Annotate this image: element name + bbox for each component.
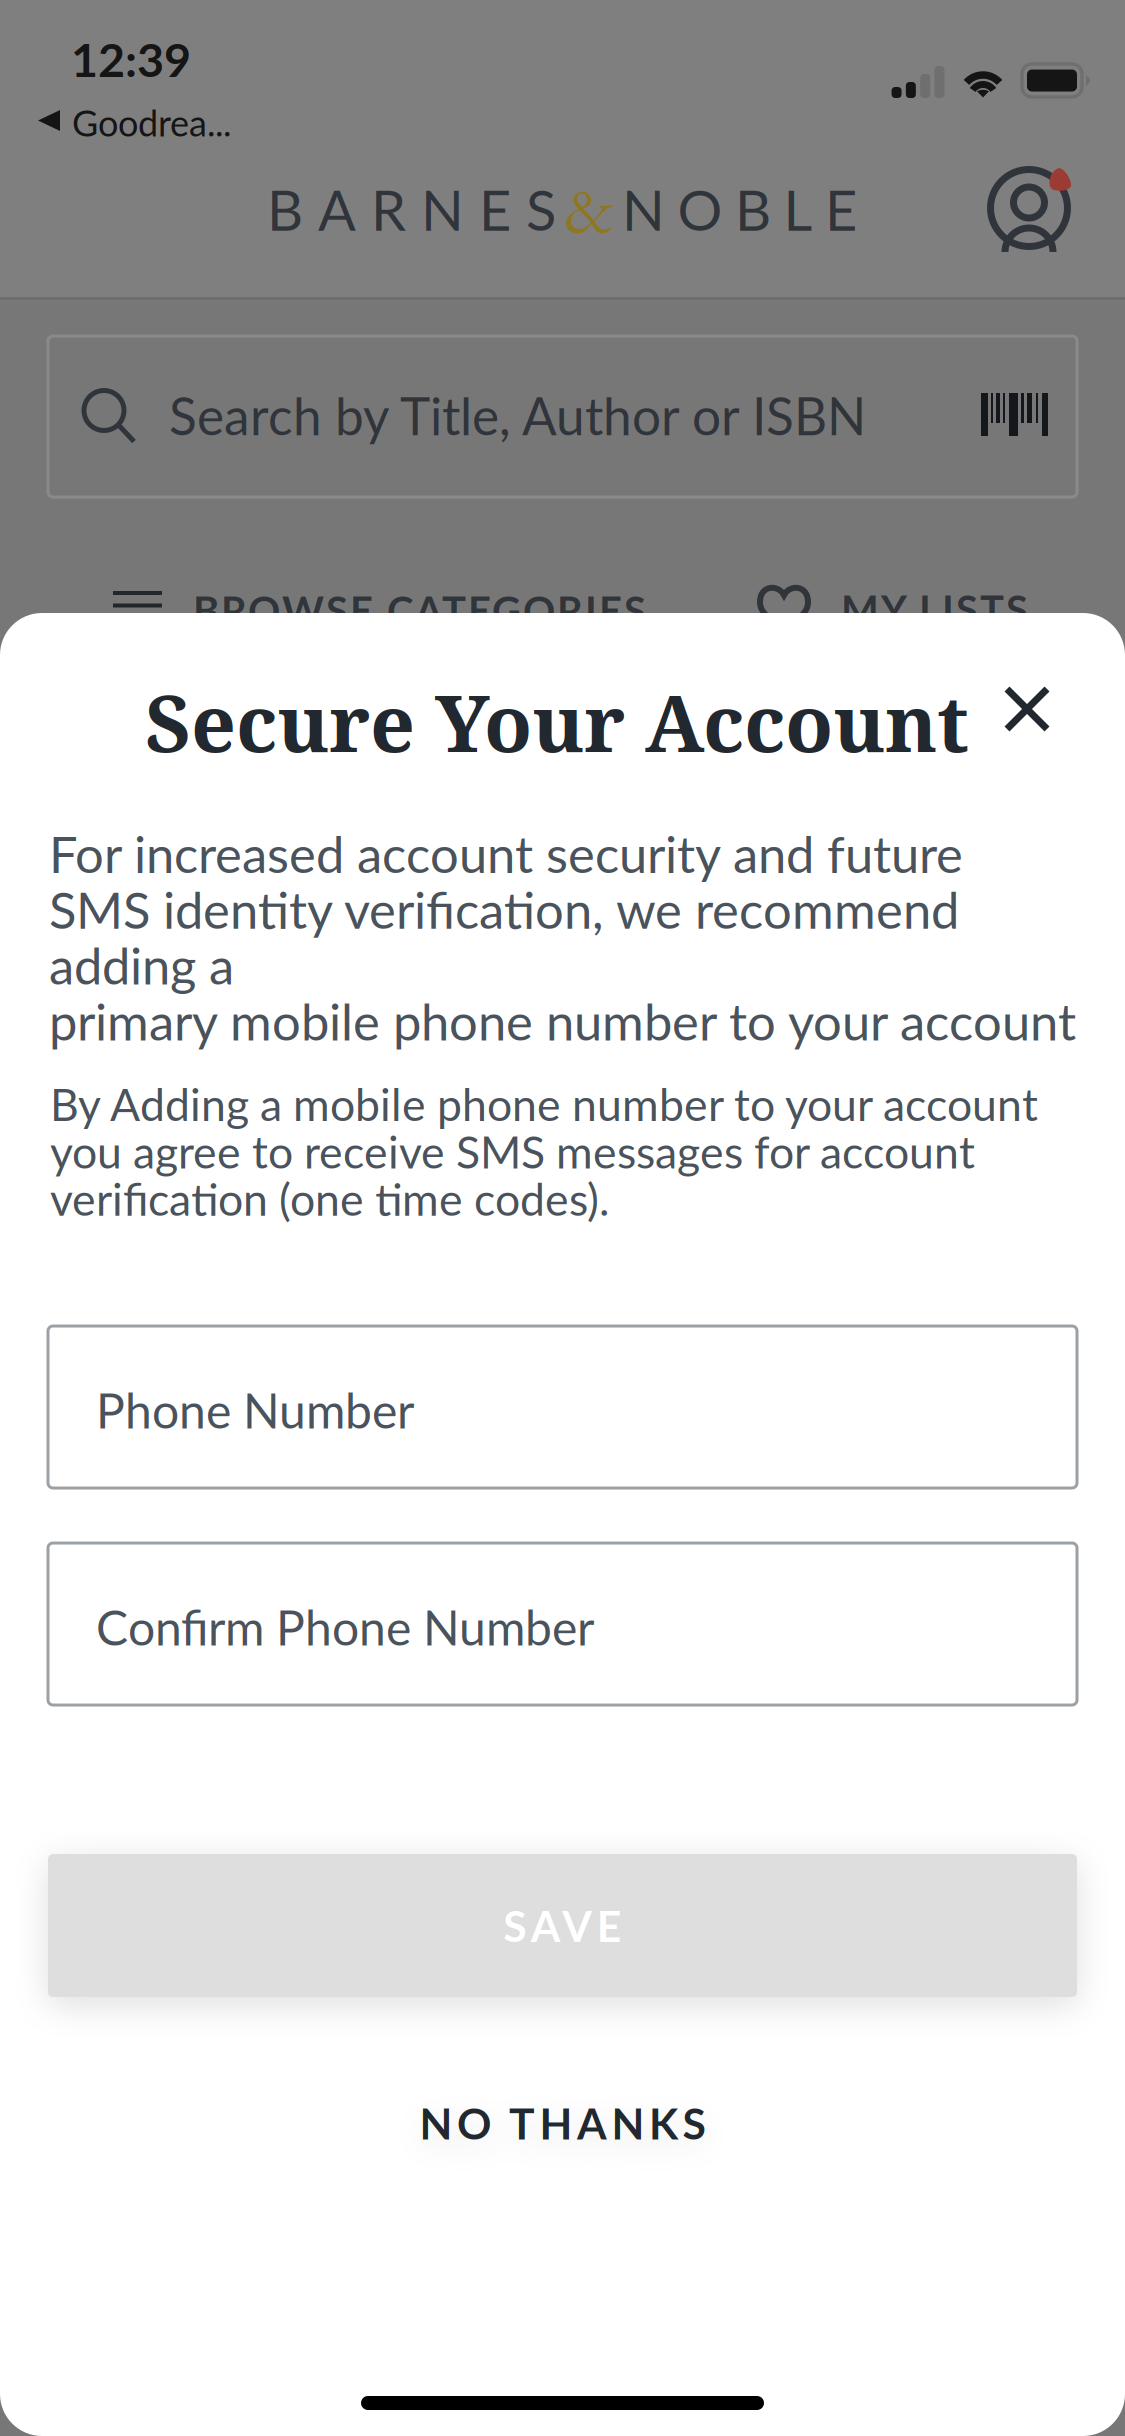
button[interactable]: NO THANKS [48, 2075, 1077, 2171]
staticText: NOBLE [622, 175, 857, 243]
staticText: MY LISTS [841, 585, 1028, 633]
staticText: SMS identity verification, we recommend [49, 879, 959, 940]
staticText: Confirm Phone Number [96, 1598, 594, 1656]
staticText: Search by Title, Author or ISBN [169, 385, 866, 446]
staticText: Phone Number [96, 1381, 414, 1439]
staticText: you agree to receive SMS messages for ac… [50, 1124, 975, 1178]
staticText: & [564, 165, 614, 252]
staticText: Goodrea... [72, 101, 231, 144]
staticText: Secure Your Account [145, 668, 969, 775]
staticText: 12:39 [71, 31, 191, 87]
staticText: BARNES [267, 175, 556, 243]
staticText: SAVE [503, 1900, 622, 1951]
staticText: adding a [49, 935, 234, 995]
staticText: For increased account security and futur… [49, 823, 963, 884]
staticText: verification (one time codes). [50, 1172, 610, 1225]
staticText: primary mobile phone number to your acco… [49, 990, 1076, 1051]
button[interactable]: BROWSE CATEGORIES [113, 586, 643, 638]
staticText: BROWSE CATEGORIES [193, 586, 646, 634]
button[interactable]: Search [48, 336, 1077, 497]
button[interactable]: Close [983, 665, 1071, 753]
staticText: NO THANKS [419, 2097, 705, 2149]
button[interactable]: MY LISTS [757, 586, 1027, 638]
button[interactable]: SAVE [48, 1854, 1077, 1997]
button[interactable]: Confirm Phone Number [48, 1543, 1077, 1705]
button[interactable]: Account [987, 166, 1077, 254]
button[interactable]: Phone Number [48, 1326, 1077, 1488]
staticText: By Adding a mobile phone number to your … [50, 1077, 1038, 1130]
